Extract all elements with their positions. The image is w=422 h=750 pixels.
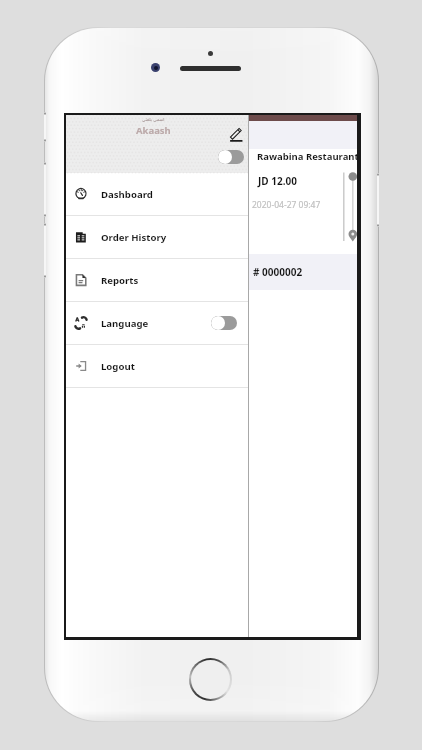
staticText: Order History xyxy=(101,231,167,244)
staticText: 2020-04-27 09:47 xyxy=(252,199,321,211)
button[interactable]: Availability toggle xyxy=(218,150,244,164)
staticText: Akaash xyxy=(136,124,171,137)
staticText: Logout xyxy=(101,360,135,373)
staticText: اسمي بلغتي xyxy=(142,116,165,122)
staticText: JD 12.00 xyxy=(258,174,297,188)
staticText: # 0000002 xyxy=(253,265,303,279)
button[interactable]: Edit profile xyxy=(229,127,243,141)
button[interactable]: Reports xyxy=(66,259,248,301)
button[interactable]: Logout xyxy=(66,345,248,387)
staticText: Rawabina Restaurant xyxy=(257,150,357,163)
button[interactable]: Language xyxy=(66,302,248,344)
button[interactable]: Dashboard xyxy=(66,173,248,215)
staticText: Reports xyxy=(101,274,139,287)
staticText: Dashboard xyxy=(101,188,153,201)
button[interactable]: Language toggle xyxy=(211,316,237,330)
staticText: Language xyxy=(101,317,149,330)
button[interactable]: Order History xyxy=(66,216,248,258)
